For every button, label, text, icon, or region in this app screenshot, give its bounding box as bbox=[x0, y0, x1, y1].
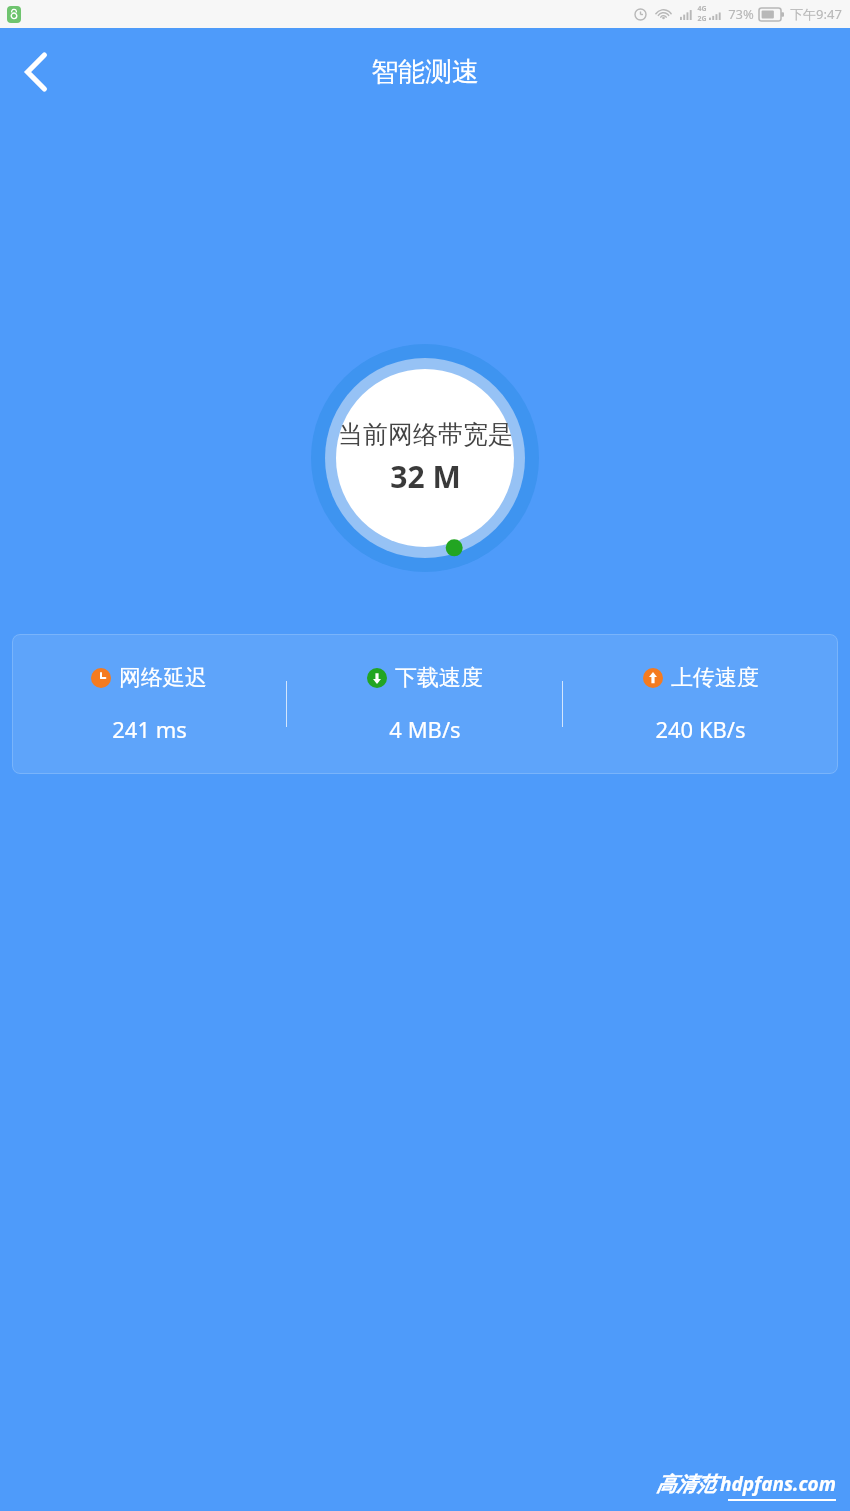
staticText: 上传速度 bbox=[671, 664, 759, 692]
button[interactable]: 下载速度 bbox=[287, 664, 562, 744]
staticText: 当前网络带宽是 bbox=[338, 419, 513, 450]
staticText: 高清范 bbox=[656, 1472, 716, 1497]
staticText: 下载速度 bbox=[395, 664, 483, 692]
staticText: 4 MB/s bbox=[389, 714, 461, 744]
staticText: 网络延迟 bbox=[119, 664, 207, 692]
staticText: 智能测速 bbox=[371, 55, 479, 89]
button[interactable]: Back bbox=[0, 36, 72, 108]
staticText: 下午9:47 bbox=[790, 5, 842, 23]
staticText: 2G bbox=[697, 14, 707, 24]
staticText: 32 M bbox=[390, 456, 461, 497]
staticText: 73% bbox=[728, 5, 754, 23]
staticText: 240 KB/s bbox=[655, 714, 746, 744]
staticText: 4G bbox=[697, 4, 707, 14]
staticText: hdpfans.com bbox=[720, 1471, 836, 1497]
button[interactable]: 网络延迟 bbox=[12, 664, 286, 744]
staticText: 241 ms bbox=[112, 714, 187, 744]
button[interactable]: 上传速度 bbox=[563, 664, 838, 744]
